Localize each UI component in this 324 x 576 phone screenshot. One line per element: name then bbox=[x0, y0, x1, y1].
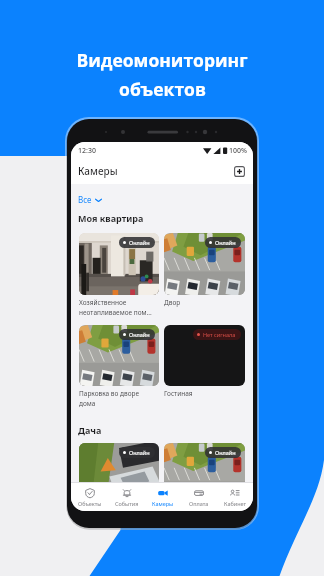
staticText: Видеомониторинг bbox=[76, 48, 248, 72]
staticText: Онлайн bbox=[129, 331, 150, 338]
staticText: Все bbox=[78, 194, 92, 205]
staticText: Камеры bbox=[152, 500, 174, 507]
button[interactable]: Онлайн bbox=[164, 443, 245, 505]
button[interactable]: Онлайн bbox=[164, 233, 245, 307]
staticText: Двор bbox=[164, 298, 181, 307]
staticText: Камеры bbox=[78, 164, 118, 178]
button[interactable]: Онлайн bbox=[79, 325, 159, 408]
staticText: Гостиная bbox=[164, 389, 193, 398]
button[interactable]: Онлайн bbox=[79, 233, 159, 317]
staticText: Онлайн bbox=[215, 449, 236, 456]
button[interactable]: Онлайн bbox=[79, 443, 159, 505]
button[interactable]: Все bbox=[78, 194, 102, 205]
staticText: Кабинет bbox=[224, 500, 247, 507]
staticText: Онлайн bbox=[129, 239, 150, 246]
staticText: 100% bbox=[229, 146, 247, 156]
staticText: Моя квартира bbox=[78, 212, 144, 224]
staticText: 12:30 bbox=[78, 146, 96, 156]
button[interactable]: Оплата bbox=[181, 483, 217, 511]
staticText: Оплата bbox=[189, 500, 209, 507]
staticText: Онлайн bbox=[215, 239, 236, 246]
staticText: Дача bbox=[78, 424, 102, 436]
button[interactable]: События bbox=[108, 483, 145, 511]
staticText: Нет сигнала bbox=[203, 331, 236, 338]
button[interactable]: Камеры bbox=[145, 483, 181, 511]
staticText: Хозяйственное неотапливаемое пом... bbox=[79, 298, 152, 317]
button[interactable]: Объекты bbox=[71, 483, 108, 511]
staticText: Онлайн bbox=[129, 449, 150, 456]
staticText: Парковка во дворе дома bbox=[79, 389, 140, 408]
button[interactable]: Нет сигнала bbox=[164, 325, 245, 398]
button[interactable]: Add camera bbox=[234, 166, 245, 177]
staticText: объектов bbox=[119, 77, 206, 101]
button[interactable]: Кабинет bbox=[217, 483, 253, 511]
staticText: Объекты bbox=[78, 500, 102, 507]
staticText: События bbox=[115, 500, 139, 507]
